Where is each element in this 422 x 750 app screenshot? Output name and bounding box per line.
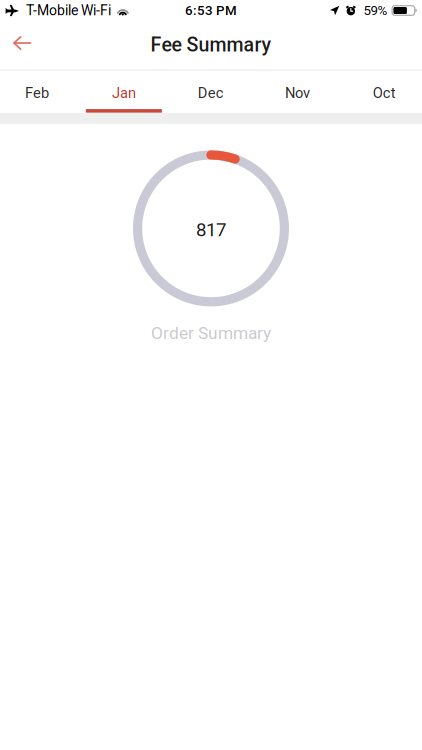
staticText: Nov: [285, 84, 310, 102]
staticText: Order Summary: [151, 323, 271, 343]
button[interactable]: Oct: [341, 71, 422, 113]
button[interactable]: Feb: [0, 71, 80, 113]
staticText: 59%: [363, 3, 387, 18]
staticText: T-Mobile Wi-Fi: [26, 2, 111, 19]
button[interactable]: Back: [0, 25, 43, 64]
staticText: Jan: [112, 84, 136, 102]
staticText: Fee Summary: [150, 33, 271, 56]
button[interactable]: Dec: [167, 71, 254, 113]
button[interactable]: Nov: [254, 71, 341, 113]
staticText: Feb: [25, 84, 49, 102]
staticText: Dec: [198, 84, 224, 102]
staticText: 6:53 PM: [185, 3, 237, 18]
staticText: Oct: [373, 84, 396, 102]
staticText: 817: [196, 219, 226, 241]
button[interactable]: Jan: [80, 71, 167, 113]
